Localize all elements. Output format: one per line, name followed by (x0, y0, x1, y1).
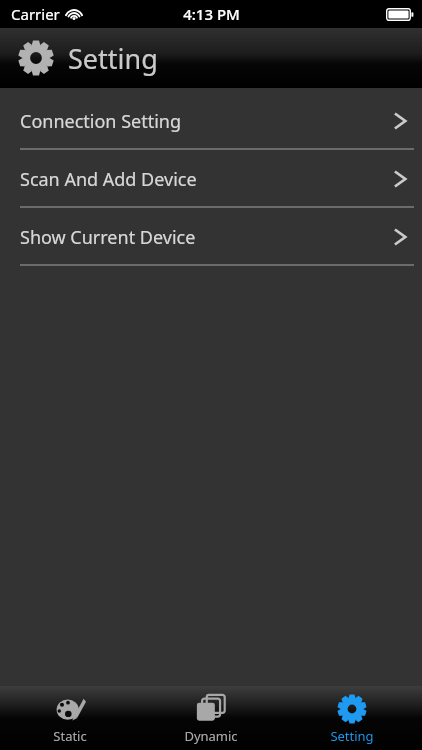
staticText: 4:13 PM (183, 4, 240, 24)
staticText: Carrier (11, 4, 60, 24)
other: Settings (17, 39, 55, 77)
button[interactable]: Setting (281, 686, 422, 750)
button[interactable]: Show Current Device (0, 208, 422, 266)
button[interactable]: Scan And Add Device (0, 150, 422, 208)
staticText: Static (53, 727, 87, 745)
other: Static (56, 694, 86, 724)
button[interactable]: Connection Setting (0, 92, 422, 150)
staticText: Scan And Add Device (20, 167, 197, 192)
staticText: Setting (330, 727, 374, 745)
staticText: Connection Setting (20, 109, 182, 134)
staticText: Show Current Device (20, 225, 196, 250)
other: Dynamic (196, 694, 225, 723)
staticText: Setting (68, 40, 158, 77)
staticText: Dynamic (184, 727, 238, 745)
button[interactable]: Static (0, 686, 140, 750)
button[interactable]: Dynamic (140, 686, 281, 750)
other: Setting (337, 694, 367, 724)
